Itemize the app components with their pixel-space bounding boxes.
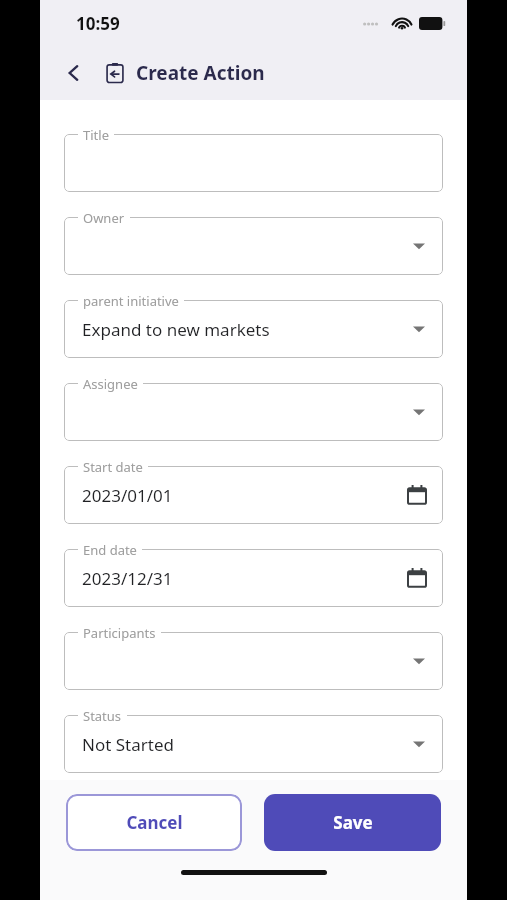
button[interactable]: Cancel (66, 794, 242, 851)
button[interactable]: Back (54, 53, 94, 93)
staticText: 2023/12/31 (82, 567, 173, 590)
button[interactable]: Save (264, 794, 441, 851)
staticText: Expand to new markets (82, 318, 270, 341)
staticText: Assignee (83, 375, 138, 393)
staticText: Create Action (136, 60, 265, 86)
button[interactable]: Assignee (40, 366, 467, 449)
staticText: Participants (83, 624, 156, 642)
staticText: 10:59 (76, 12, 120, 35)
staticText: Owner (83, 209, 125, 227)
button[interactable]: 2023/01/01 (40, 449, 467, 532)
staticText: Not Started (82, 733, 174, 756)
staticText: Cancel (126, 811, 183, 834)
button[interactable]: Owner (40, 200, 467, 283)
button[interactable]: 2023/12/31 (40, 532, 467, 615)
staticText: Start date (83, 458, 143, 476)
staticText: Title (83, 126, 109, 144)
staticText: 2023/01/01 (82, 484, 173, 507)
button[interactable]: Title (40, 117, 467, 200)
staticText: End date (83, 541, 137, 559)
staticText: Save (333, 811, 373, 834)
button[interactable]: Participants (40, 615, 467, 698)
button[interactable]: Not Started (40, 698, 467, 780)
staticText: parent initiative (83, 292, 179, 310)
staticText: Status (83, 707, 122, 725)
button[interactable]: Expand to new markets (40, 283, 467, 366)
